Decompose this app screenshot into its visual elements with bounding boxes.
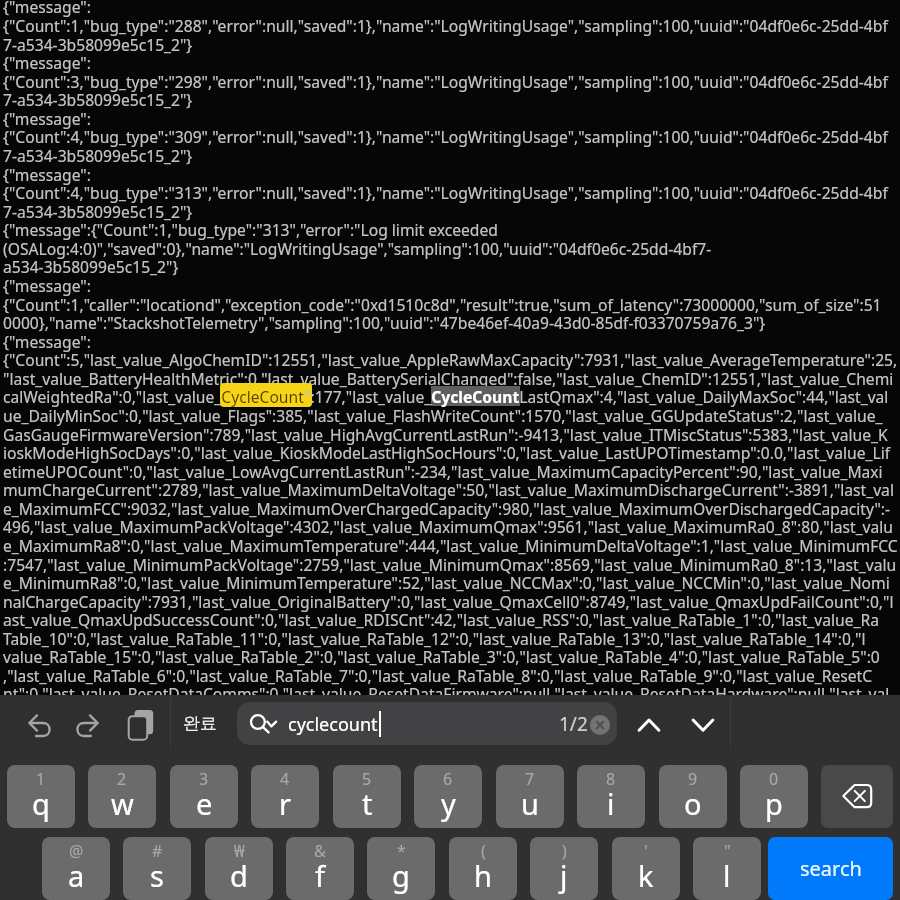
- staticText: 완료: [183, 713, 217, 734]
- button[interactable]: Next match: [683, 709, 723, 741]
- staticText: r: [279, 784, 291, 823]
- button[interactable]: 완료: [178, 706, 222, 740]
- staticText: {"message":: [3, 164, 91, 185]
- staticText: (OSALog:4:0)","saved":0},"name":"LogWrit…: [3, 238, 712, 259]
- staticText: *: [397, 840, 406, 862]
- staticText: ': [644, 840, 648, 862]
- button[interactable]: @: [42, 837, 110, 900]
- staticText: (: [481, 840, 486, 862]
- staticText: 3: [199, 768, 209, 790]
- staticText: f: [315, 856, 325, 895]
- button[interactable]: 5: [333, 765, 401, 828]
- staticText: {"Count":3,"bug_type":"298","error":null…: [3, 71, 888, 92]
- staticText: 0: [769, 768, 779, 790]
- button[interactable]: ): [530, 837, 598, 900]
- staticText: {"Count":4,"bug_type":"313","error":null…: [3, 182, 888, 203]
- staticText: a534-3b58099e5c15_2"}: [3, 256, 179, 277]
- staticText: q: [32, 784, 50, 823]
- staticText: ": [724, 840, 731, 862]
- staticText: e_MaximumFCC":9032,"last_value_MaximumOv…: [3, 498, 891, 519]
- staticText: 7-a534-3b58099e5c15_2"}: [3, 34, 193, 55]
- button[interactable]: 7: [496, 765, 564, 828]
- staticText: {"message":: [3, 52, 91, 73]
- button[interactable]: Clear search: [590, 715, 610, 735]
- button[interactable]: cyclecount: [237, 702, 617, 745]
- staticText: 7-a534-3b58099e5c15_2"}: [3, 201, 193, 222]
- button[interactable]: ": [693, 837, 761, 900]
- staticText: {"Count":5,"last_value_AlgoChemID":12551…: [3, 349, 898, 370]
- staticText: k: [638, 856, 654, 895]
- button[interactable]: search: [768, 837, 893, 900]
- button[interactable]: #: [123, 837, 191, 900]
- staticText: ioskModeHighSocDays":0,"last_value_Kiosk…: [3, 442, 891, 463]
- staticText: d: [230, 856, 248, 895]
- staticText: value_RaTable_15":0,"last_value_RaTable_…: [3, 646, 880, 667]
- button[interactable]: Undo: [19, 709, 63, 743]
- button[interactable]: Copy: [124, 707, 158, 743]
- staticText: cyclecount: [288, 712, 378, 737]
- staticText: ₩: [234, 840, 245, 862]
- staticText: Table_10":0,"last_value_RaTable_11":0,"l…: [3, 628, 866, 649]
- staticText: {"message":{"Count":1,"bug_type":"313","…: [3, 219, 498, 240]
- staticText: :7547,"last_value_MinimumPackVoltage":27…: [3, 554, 897, 575]
- staticText: nalChargeCapacity":7931,"last_value_Orig…: [3, 591, 894, 612]
- button[interactable]: 2: [88, 765, 156, 828]
- staticText: a: [68, 856, 85, 895]
- staticText: @: [69, 840, 84, 862]
- button[interactable]: Backspace: [821, 765, 893, 828]
- staticText: s: [150, 856, 164, 895]
- staticText: t: [362, 784, 373, 823]
- staticText: h: [474, 856, 492, 895]
- staticText: 6: [443, 768, 453, 790]
- button[interactable]: ₩: [205, 837, 273, 900]
- button[interactable]: Redo: [64, 709, 108, 743]
- staticText: search: [800, 855, 862, 882]
- button[interactable]: *: [367, 837, 435, 900]
- staticText: 2: [117, 768, 127, 790]
- staticText: i: [607, 784, 615, 823]
- staticText: {"Count":1,"caller":"locationd","excepti…: [3, 294, 882, 315]
- staticText: &: [314, 840, 326, 862]
- staticText: ue_DailyMinSoc":0,"last_value_Flags":385…: [3, 405, 883, 426]
- staticText: g: [392, 856, 410, 895]
- button[interactable]: 1: [7, 765, 75, 828]
- staticText: {"Count":4,"bug_type":"309","error":null…: [3, 126, 888, 147]
- staticText: etimeUPOCount":0,"last_value_LowAvgCurre…: [3, 461, 883, 482]
- staticText: 7-a534-3b58099e5c15_2"}: [3, 145, 193, 166]
- button[interactable]: 6: [414, 765, 482, 828]
- staticText: o: [684, 784, 702, 823]
- staticText: ,"last_value_RaTable_6":0,"last_value_Ra…: [3, 665, 873, 686]
- button[interactable]: (: [449, 837, 517, 900]
- staticText: {"message":: [3, 108, 91, 129]
- staticText: "last_value_BatteryHealthMetric":0,"last…: [3, 368, 894, 389]
- button[interactable]: &: [286, 837, 354, 900]
- staticText: ast_value_QmaxUpdSuccessCount":0,"last_v…: [3, 609, 879, 630]
- staticText: 7-a534-3b58099e5c15_2"}: [3, 89, 193, 110]
- staticText: w: [111, 784, 134, 823]
- staticText: mumChargeCurrent":2789,"last_value_Maxim…: [3, 479, 900, 500]
- staticText: 1/2: [559, 711, 588, 737]
- button[interactable]: ': [612, 837, 680, 900]
- staticText: GasGaugeFirmwareVersion":789,"last_value…: [3, 424, 888, 445]
- staticText: 496,"last_value_MaximumPackVoltage":4302…: [3, 516, 894, 537]
- button[interactable]: 9: [659, 765, 727, 828]
- button[interactable]: 3: [170, 765, 238, 828]
- staticText: 1: [36, 768, 46, 790]
- staticText: y: [441, 784, 456, 823]
- staticText: #: [152, 840, 163, 862]
- staticText: u: [521, 784, 539, 823]
- staticText: e_MaximumRa8":0,"last_value_MaximumTempe…: [3, 535, 900, 556]
- staticText: j: [560, 856, 568, 895]
- staticText: {"message":: [3, 275, 91, 296]
- staticText: e: [196, 784, 213, 823]
- staticText: {"message":: [3, 0, 91, 17]
- staticText: {"message":: [3, 331, 91, 352]
- staticText: ): [562, 840, 567, 862]
- staticText: calWeightedRa":0,"last_value_CycleCount"…: [3, 386, 889, 407]
- button[interactable]: 8: [577, 765, 645, 828]
- staticText: 4: [280, 768, 290, 790]
- button[interactable]: Previous match: [629, 709, 669, 741]
- staticText: 5: [362, 768, 372, 790]
- button[interactable]: 4: [251, 765, 319, 828]
- button[interactable]: 0: [740, 765, 808, 828]
